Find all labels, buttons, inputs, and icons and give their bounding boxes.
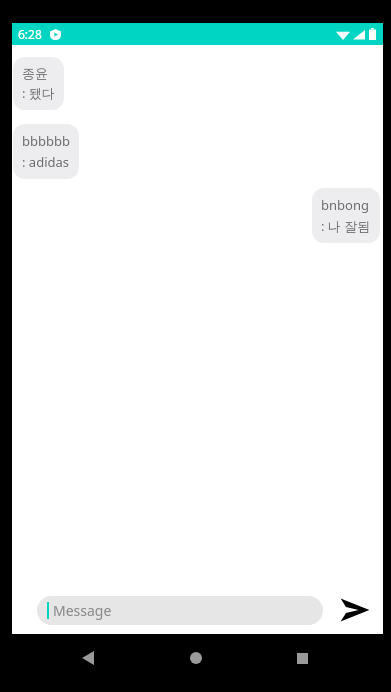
button[interactable]: 종윤: [13, 57, 64, 110]
staticText: bbbbbb: [22, 132, 70, 150]
button[interactable]: Message: [37, 596, 323, 625]
button[interactable]: bnbong: [312, 188, 380, 243]
staticText: : adidas: [22, 153, 70, 171]
button[interactable]: Home: [182, 644, 210, 672]
staticText: : 나 잘됨: [321, 217, 371, 235]
staticText: 종윤: [22, 65, 48, 81]
button[interactable]: Recent apps: [288, 644, 316, 672]
button[interactable]: bbbbbb: [13, 124, 79, 179]
staticText: Message: [53, 601, 112, 620]
button[interactable]: Send: [333, 588, 377, 632]
staticText: : 됐다: [22, 84, 55, 102]
staticText: bnbong: [321, 196, 369, 214]
staticText: 6:28: [18, 26, 42, 42]
button[interactable]: Back: [74, 644, 102, 672]
